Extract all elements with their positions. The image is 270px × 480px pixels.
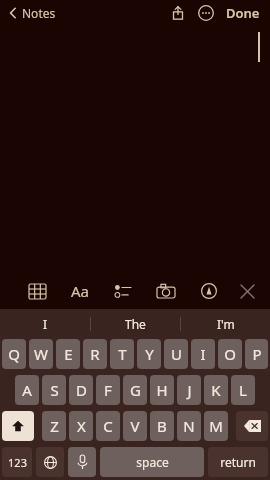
staticText: X bbox=[77, 416, 86, 436]
button[interactable]: space bbox=[100, 447, 204, 477]
button[interactable]: Backspace bbox=[236, 411, 268, 441]
staticText: F bbox=[104, 380, 112, 400]
staticText: Done bbox=[226, 4, 260, 22]
staticText: L bbox=[239, 380, 247, 400]
button[interactable]: I'm bbox=[181, 309, 270, 339]
button[interactable]: Q bbox=[2, 339, 26, 369]
button[interactable]: Shift bbox=[2, 411, 34, 441]
button[interactable]: B bbox=[150, 411, 174, 441]
staticText: V bbox=[130, 416, 140, 436]
staticText: W bbox=[34, 344, 48, 364]
staticText: G bbox=[130, 380, 141, 400]
staticText: I bbox=[43, 316, 48, 332]
button[interactable]: A bbox=[15, 375, 39, 405]
staticText: T bbox=[118, 344, 127, 364]
button[interactable]: return bbox=[208, 447, 268, 477]
staticText: Q bbox=[8, 344, 20, 364]
staticText: The bbox=[125, 316, 146, 332]
button[interactable]: G bbox=[123, 375, 147, 405]
button[interactable]: K bbox=[204, 375, 228, 405]
button[interactable]: Done bbox=[220, 0, 266, 26]
staticText: space bbox=[136, 454, 169, 470]
button[interactable]: Markup bbox=[194, 276, 224, 306]
button[interactable]: L bbox=[231, 375, 255, 405]
staticText: Z bbox=[50, 416, 59, 436]
button[interactable]: Notes bbox=[6, 1, 58, 25]
button[interactable]: Camera bbox=[151, 276, 181, 306]
staticText: 123 bbox=[8, 455, 27, 470]
staticText: E bbox=[64, 344, 73, 364]
staticText: N bbox=[183, 416, 195, 436]
button[interactable]: D bbox=[69, 375, 93, 405]
staticText: O bbox=[224, 344, 236, 364]
button[interactable]: J bbox=[177, 375, 201, 405]
staticText: S bbox=[50, 380, 59, 400]
button[interactable]: Checklist bbox=[108, 276, 138, 306]
button[interactable]: Y bbox=[137, 339, 161, 369]
button[interactable]: I bbox=[0, 309, 90, 339]
staticText: M bbox=[209, 416, 223, 436]
button[interactable]: M bbox=[204, 411, 228, 441]
button[interactable]: T bbox=[110, 339, 134, 369]
button[interactable]: V bbox=[123, 411, 147, 441]
staticText: Y bbox=[145, 344, 154, 364]
button[interactable]: P bbox=[245, 339, 268, 369]
button[interactable]: E bbox=[56, 339, 80, 369]
staticText: H bbox=[156, 380, 168, 400]
button[interactable]: Aa bbox=[65, 276, 95, 306]
button[interactable]: O bbox=[218, 339, 242, 369]
button[interactable]: The bbox=[91, 309, 180, 339]
staticText: Notes bbox=[22, 5, 56, 21]
button[interactable]: H bbox=[150, 375, 174, 405]
staticText: D bbox=[76, 380, 87, 400]
staticText: I bbox=[200, 344, 206, 364]
button[interactable]: 123 bbox=[2, 447, 32, 477]
button[interactable]: C bbox=[96, 411, 120, 441]
button[interactable]: More options bbox=[192, 0, 220, 26]
staticText: B bbox=[157, 416, 167, 436]
button[interactable]: R bbox=[83, 339, 107, 369]
button[interactable]: Close bbox=[232, 276, 262, 306]
button[interactable]: X bbox=[69, 411, 93, 441]
button[interactable]: S bbox=[42, 375, 66, 405]
staticText: K bbox=[211, 380, 221, 400]
staticText: A bbox=[22, 380, 32, 400]
button[interactable]: Dictate bbox=[68, 447, 96, 477]
staticText: Aa bbox=[71, 281, 90, 301]
staticText: C bbox=[103, 416, 113, 436]
staticText: P bbox=[252, 344, 262, 364]
button[interactable]: N bbox=[177, 411, 201, 441]
staticText: I'm bbox=[217, 316, 235, 332]
button[interactable]: W bbox=[29, 339, 53, 369]
staticText: U bbox=[171, 344, 182, 364]
button[interactable]: F bbox=[96, 375, 120, 405]
button[interactable]: I bbox=[191, 339, 215, 369]
staticText: J bbox=[187, 380, 192, 400]
button[interactable]: Switch keyboard bbox=[36, 447, 64, 477]
button[interactable]: Table bbox=[22, 276, 52, 306]
button[interactable]: Z bbox=[42, 411, 66, 441]
button[interactable]: Share bbox=[164, 0, 192, 26]
staticText: return bbox=[220, 454, 256, 470]
staticText: R bbox=[90, 344, 100, 364]
button[interactable]: U bbox=[164, 339, 188, 369]
